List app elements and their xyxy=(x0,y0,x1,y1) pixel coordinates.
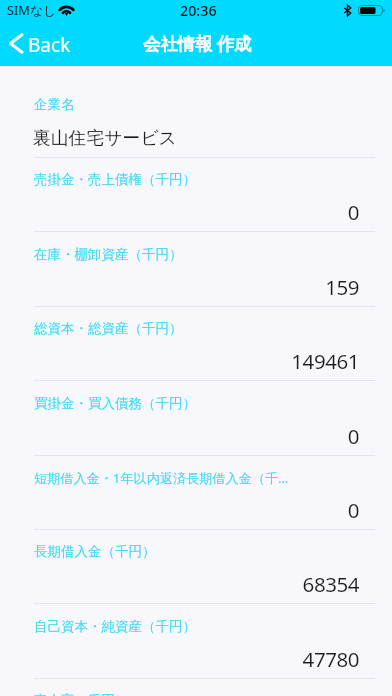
button[interactable]: 自己資本・純資産（千円） xyxy=(0,605,392,679)
staticText: 総資本・総資産（千円） xyxy=(34,320,183,337)
button[interactable]: 短期借入金・1年以内返済長期借入金（千… xyxy=(0,456,392,530)
staticText: 企業名 xyxy=(34,96,75,113)
staticText: SIMなし xyxy=(7,1,57,18)
staticText: 売掛金・売上債権（千円） xyxy=(34,171,196,188)
staticText: 裏山住宅サービス xyxy=(33,127,359,149)
staticText: 長期借入金（千円） xyxy=(34,543,156,560)
staticText: 0 xyxy=(33,496,359,524)
staticText: 売上高（千円） xyxy=(34,692,129,696)
staticText: 0 xyxy=(33,198,359,226)
button[interactable]: 総資本・総資産（千円） xyxy=(0,307,392,381)
staticText: 68354 xyxy=(33,570,359,598)
staticText: 20:36 xyxy=(180,1,217,20)
staticText: 買掛金・買入債務（千円） xyxy=(34,395,196,412)
staticText: 自己資本・純資産（千円） xyxy=(34,618,196,635)
button[interactable]: 長期借入金（千円） xyxy=(0,530,392,604)
staticText: 47780 xyxy=(33,645,359,673)
button[interactable]: 売掛金・売上債権（千円） xyxy=(0,158,392,232)
other: Back xyxy=(9,34,23,53)
staticText: 149461 xyxy=(33,347,359,375)
staticText: Back xyxy=(28,32,71,58)
staticText: 短期借入金・1年以内返済長期借入金（千… xyxy=(34,469,289,487)
staticText: 会社情報 作成 xyxy=(143,32,252,56)
button[interactable]: 企業名 xyxy=(0,66,392,158)
button[interactable]: Back xyxy=(9,22,71,66)
staticText: 159 xyxy=(33,273,359,301)
staticText: 0 xyxy=(33,422,359,450)
button[interactable]: 在庫・棚卸資産（千円） xyxy=(0,233,392,307)
button[interactable]: 売上高（千円） xyxy=(0,679,392,696)
staticText: 在庫・棚卸資産（千円） xyxy=(34,246,183,263)
button[interactable]: 買掛金・買入債務（千円） xyxy=(0,382,392,456)
